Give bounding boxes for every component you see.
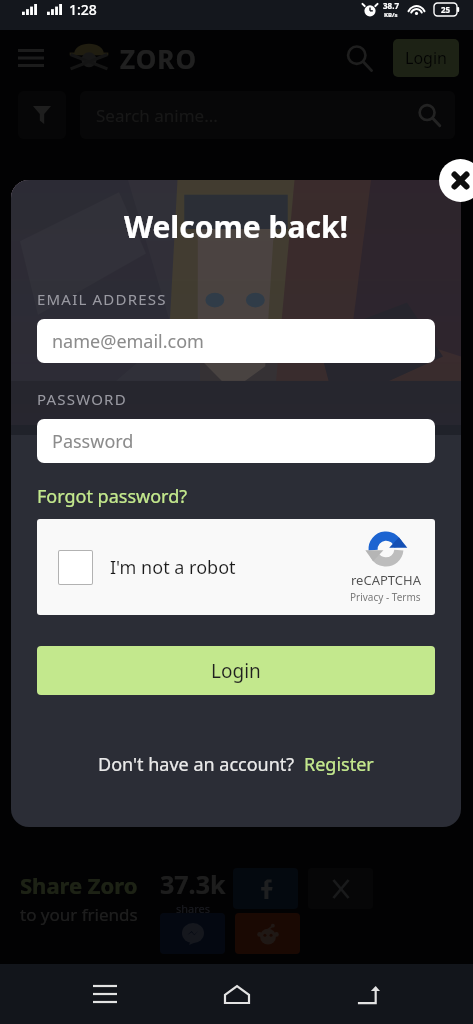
- staticText: 37.3k: [160, 867, 226, 901]
- staticText: 38.7: [383, 0, 399, 11]
- button[interactable]: Share on f: [233, 868, 298, 909]
- button[interactable]: Login: [37, 646, 435, 695]
- button[interactable]: name@email.com: [37, 319, 435, 363]
- staticText: KB/s: [384, 11, 398, 19]
- button[interactable]: I'm not a robot checkbox: [58, 550, 93, 585]
- staticText: 25: [441, 4, 451, 15]
- staticText: Password: [52, 429, 134, 454]
- button[interactable]: Home: [211, 968, 263, 1020]
- button[interactable]: Forgot password?: [37, 484, 188, 509]
- staticText: I'm not a robot: [110, 555, 236, 580]
- staticText: Don't have an account?: [98, 752, 295, 777]
- staticText: 1:28: [69, 0, 97, 19]
- staticText: EMAIL ADDRESS: [37, 289, 167, 309]
- staticText: Share Zoro: [20, 870, 138, 900]
- button[interactable]: Password: [37, 419, 435, 463]
- staticText: PASSWORD: [37, 389, 127, 409]
- button[interactable]: Share on X: [308, 868, 373, 909]
- staticText: Privacy - Terms: [350, 590, 421, 604]
- button[interactable]: Register: [304, 752, 374, 777]
- staticText: Welcome back!: [37, 206, 435, 247]
- staticText: Login: [211, 658, 261, 684]
- staticText: Search anime...: [96, 104, 218, 127]
- staticText: shares: [176, 901, 211, 916]
- button[interactable]: Close: [439, 159, 473, 202]
- button[interactable]: Back: [342, 968, 394, 1020]
- staticText: name@email.com: [52, 329, 204, 354]
- staticText: Login: [405, 47, 447, 69]
- button[interactable]: Recents: [79, 968, 131, 1020]
- button[interactable]: Share on r: [235, 913, 300, 954]
- staticText: to your friends: [20, 903, 138, 926]
- staticText: ZORO: [120, 41, 197, 76]
- staticText: reCAPTCHA: [351, 571, 421, 589]
- button[interactable]: Share on m: [160, 913, 225, 954]
